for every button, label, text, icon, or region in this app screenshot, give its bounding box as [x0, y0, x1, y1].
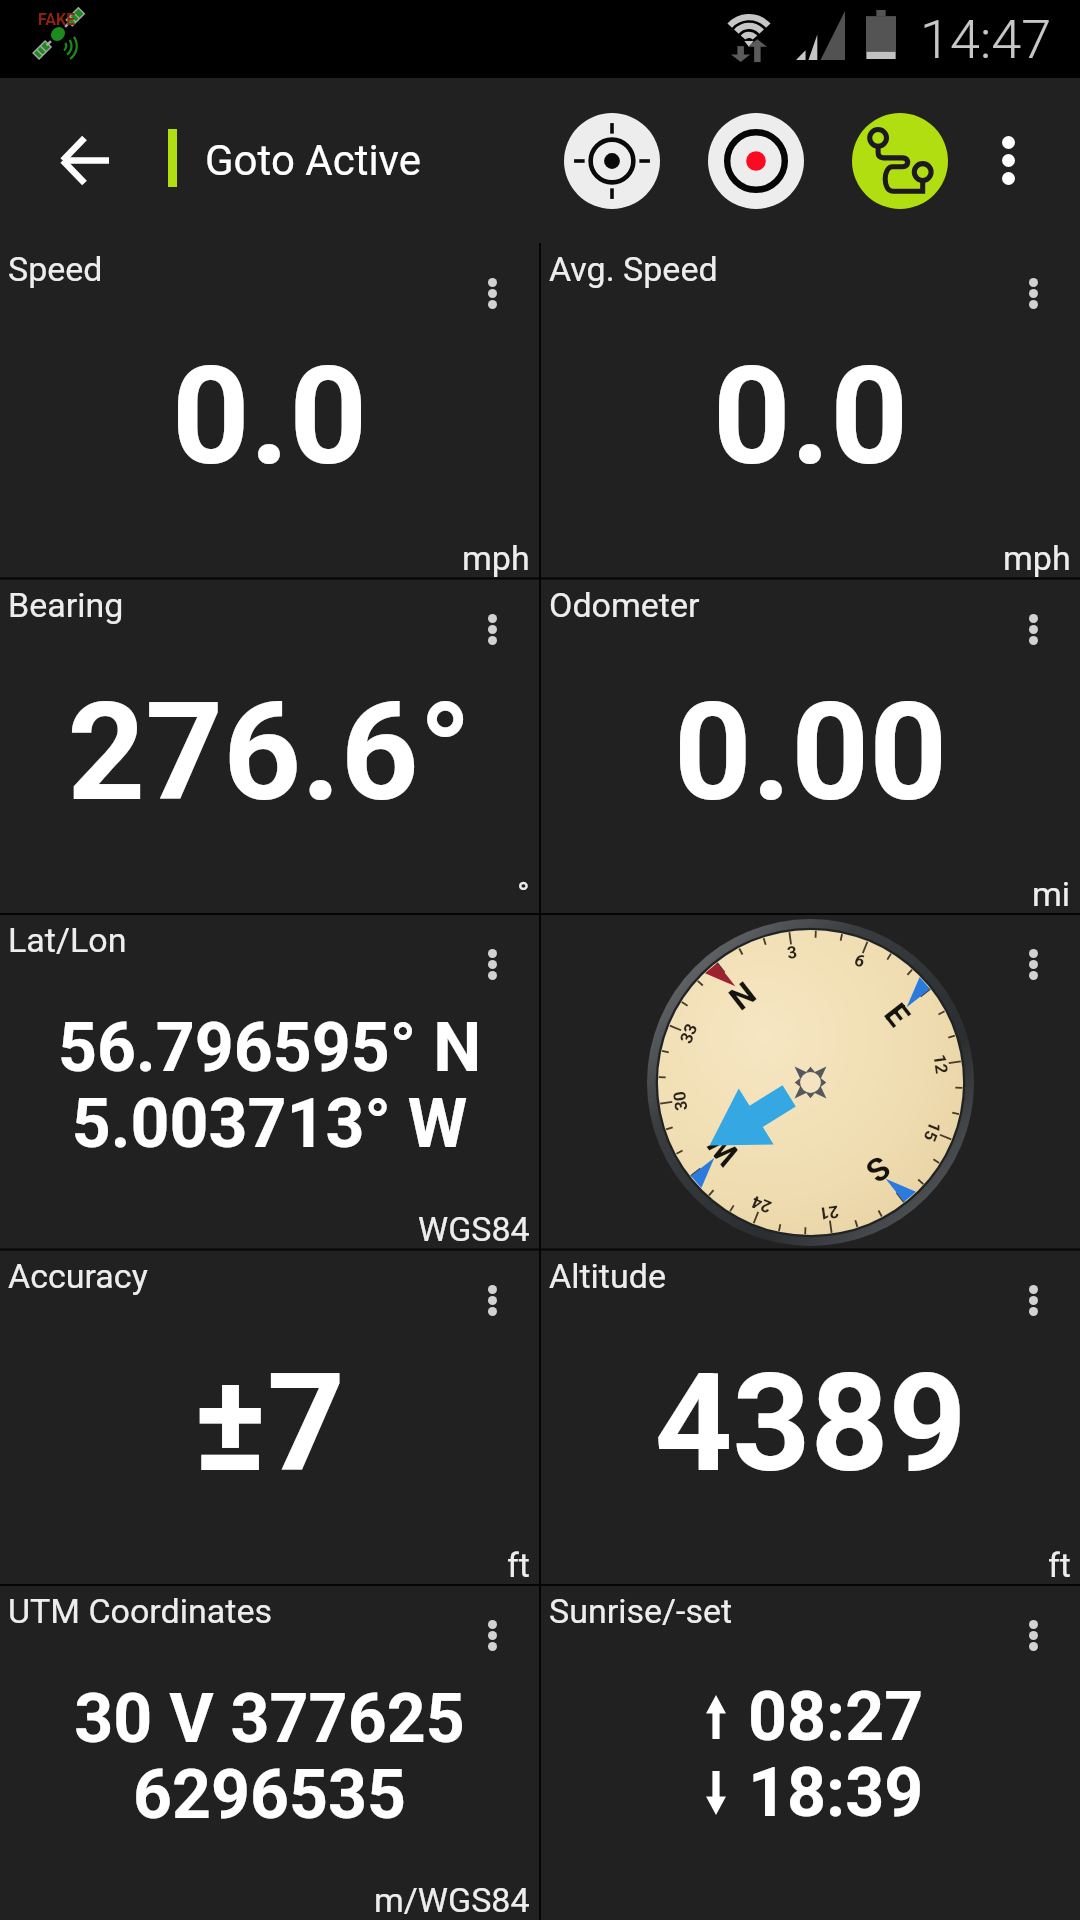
- staticText: FAKE: [38, 10, 76, 29]
- staticText: ft: [507, 1545, 530, 1585]
- button[interactable]: Center on my location: [544, 78, 680, 243]
- staticText: 08:27: [748, 1677, 924, 1757]
- staticText: Sunrise/-set: [549, 1591, 733, 1631]
- staticText: 30 V 377625 6296535: [0, 1679, 539, 1835]
- staticText: mph: [462, 538, 530, 578]
- staticText: mph: [1003, 538, 1071, 578]
- staticText: 276.6°: [0, 673, 539, 832]
- button[interactable]: Card options: [1002, 251, 1065, 336]
- staticText: mi: [1032, 874, 1071, 914]
- button[interactable]: Record track: [688, 78, 824, 243]
- button[interactable]: Accuracy: [0, 1250, 539, 1586]
- button[interactable]: Card options: [1002, 1593, 1065, 1678]
- button[interactable]: Card options: [461, 251, 524, 336]
- button[interactable]: Card options: [1002, 1258, 1065, 1343]
- staticText: 0.0: [541, 337, 1080, 496]
- staticText: Bearing: [8, 585, 124, 625]
- button[interactable]: Card options: [461, 922, 524, 1007]
- button[interactable]: Card options: [1002, 587, 1065, 672]
- staticText: °: [517, 874, 530, 914]
- button[interactable]: Sunrise/-set: [541, 1585, 1080, 1920]
- staticText: 56.796595° N 5.003713° W: [0, 1008, 539, 1164]
- button[interactable]: More options: [960, 78, 1056, 243]
- button[interactable]: Bearing: [0, 579, 539, 915]
- button[interactable]: Card options: [461, 1258, 524, 1343]
- staticText: UTM Coordinates: [8, 1591, 272, 1631]
- staticText: 4389: [541, 1344, 1080, 1503]
- staticText: 0.0: [0, 337, 539, 496]
- staticText: 0.00: [541, 673, 1080, 832]
- staticText: WGS84: [418, 1209, 530, 1249]
- button[interactable]: Card options: [541, 914, 1080, 1250]
- button[interactable]: UTM Coordinates: [0, 1585, 539, 1920]
- button[interactable]: Lat/Lon: [0, 914, 539, 1250]
- staticText: Odometer: [549, 585, 700, 625]
- staticText: ft: [1048, 1545, 1071, 1585]
- staticText: Lat/Lon: [8, 920, 127, 960]
- staticText: Altitude: [549, 1256, 666, 1296]
- staticText: 18:39: [748, 1753, 924, 1833]
- button[interactable]: Altitude: [541, 1250, 1080, 1586]
- staticText: Speed: [8, 249, 103, 289]
- staticText: Avg. Speed: [549, 249, 718, 289]
- staticText: m/WGS84: [374, 1880, 530, 1920]
- button[interactable]: Speed: [0, 243, 539, 579]
- button[interactable]: Back: [12, 78, 156, 243]
- staticText: 14:47: [920, 8, 1052, 71]
- button[interactable]: Card options: [461, 1593, 524, 1678]
- button[interactable]: Card options: [1002, 922, 1065, 1007]
- button[interactable]: Odometer: [541, 579, 1080, 915]
- button[interactable]: Avg. Speed: [541, 243, 1080, 579]
- button[interactable]: Route: [832, 78, 968, 243]
- staticText: ±7: [0, 1344, 539, 1503]
- staticText: Goto Active: [205, 136, 421, 185]
- staticText: Accuracy: [8, 1256, 148, 1296]
- button[interactable]: Card options: [461, 587, 524, 672]
